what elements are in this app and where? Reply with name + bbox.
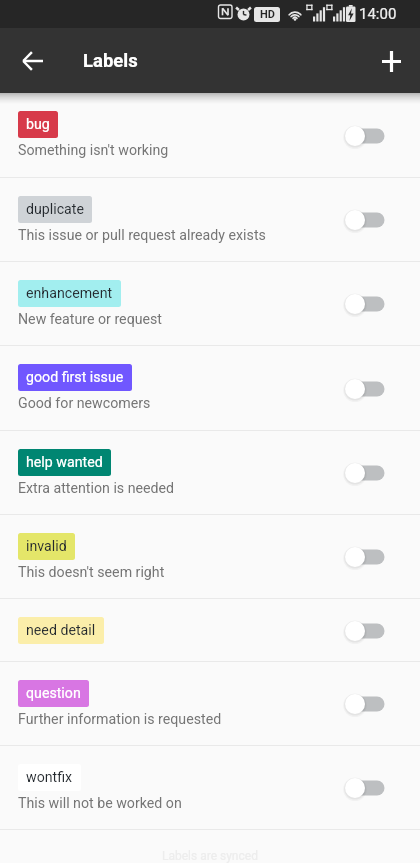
staticText: question <box>26 685 81 702</box>
button[interactable]: bug <box>0 93 420 178</box>
staticText: Extra attention is needed <box>18 480 175 497</box>
staticText: enhancement <box>26 285 113 302</box>
button[interactable]: Toggle label <box>341 456 389 490</box>
button[interactable]: good first issue <box>0 346 420 431</box>
button[interactable]: question <box>0 662 420 746</box>
button[interactable]: Toggle label <box>341 372 389 406</box>
staticText: Further information is requested <box>18 711 222 728</box>
staticText: bug <box>26 116 50 133</box>
staticText: Labels are synced <box>162 849 258 863</box>
button[interactable]: Toggle label <box>341 287 389 321</box>
staticText: This will not be worked on <box>18 795 182 812</box>
staticText: help wanted <box>26 454 103 471</box>
staticText: Good for newcomers <box>18 395 151 412</box>
button[interactable]: need detail <box>0 599 420 662</box>
button[interactable]: enhancement <box>0 262 420 346</box>
staticText: wontfix <box>26 769 73 786</box>
button[interactable]: Toggle label <box>341 771 389 805</box>
staticText: This doesn't seem right <box>18 564 165 581</box>
button[interactable]: Toggle label <box>341 203 389 237</box>
staticText: invalid <box>26 538 67 555</box>
button[interactable]: duplicate <box>0 178 420 262</box>
staticText: This issue or pull request already exist… <box>18 227 266 244</box>
staticText: duplicate <box>26 201 84 218</box>
staticText: Labels <box>83 50 138 72</box>
button[interactable]: Back <box>10 38 56 84</box>
staticText: HD <box>260 8 275 21</box>
button[interactable]: Toggle label <box>341 687 389 721</box>
button[interactable]: Toggle label <box>341 614 389 648</box>
button[interactable]: Toggle label <box>341 540 389 574</box>
staticText: need detail <box>26 622 96 639</box>
staticText: New feature or request <box>18 311 163 328</box>
staticText: 14:00 <box>359 5 397 23</box>
button[interactable]: Toggle label <box>341 119 389 153</box>
button[interactable]: Add label <box>368 38 414 84</box>
staticText: Something isn't working <box>18 142 169 159</box>
button[interactable]: help wanted <box>0 431 420 515</box>
button[interactable]: wontfix <box>0 746 420 830</box>
button[interactable]: invalid <box>0 515 420 599</box>
staticText: good first issue <box>26 369 124 386</box>
